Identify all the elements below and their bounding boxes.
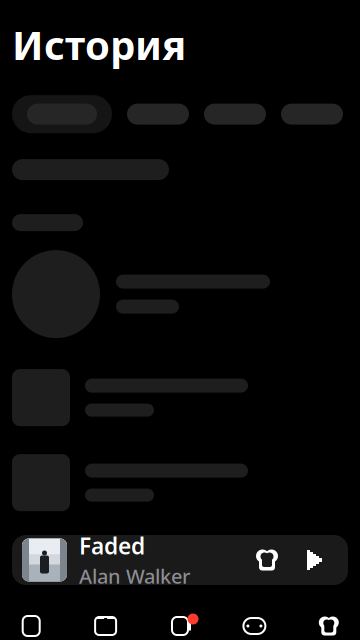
staticText: Alan Walker bbox=[79, 563, 190, 589]
button[interactable]: Stories bbox=[217, 612, 292, 640]
button[interactable]: Filter four bbox=[281, 104, 343, 125]
button[interactable]: Filter three bbox=[204, 104, 266, 125]
button[interactable]: Camera bbox=[143, 612, 217, 640]
button[interactable]: Chats bbox=[68, 612, 143, 640]
staticText: История bbox=[12, 18, 186, 71]
button[interactable]: Favorites bbox=[292, 612, 360, 640]
button[interactable]: Faded bbox=[12, 535, 348, 585]
button[interactable]: Home bbox=[0, 612, 68, 640]
button[interactable]: Filter two bbox=[127, 104, 189, 125]
button[interactable]: Filter all bbox=[12, 95, 112, 133]
staticText: Faded bbox=[79, 531, 145, 561]
